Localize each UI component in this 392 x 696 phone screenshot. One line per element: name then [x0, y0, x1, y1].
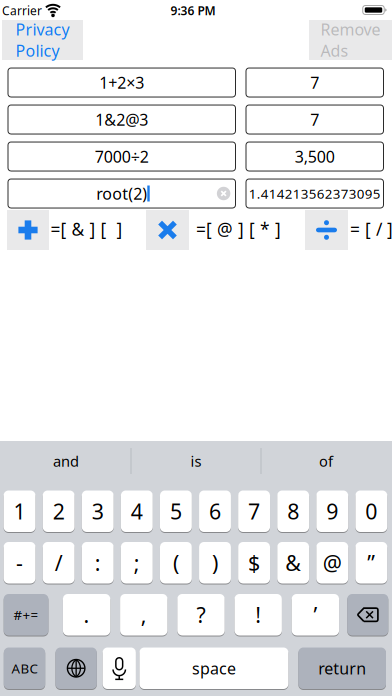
button[interactable]: ’	[292, 593, 339, 636]
button[interactable]: ;	[121, 541, 153, 584]
staticText: 4	[131, 497, 143, 525]
staticText: 9	[326, 497, 338, 525]
staticText: $	[248, 549, 260, 577]
button[interactable]: #+=	[4, 593, 48, 636]
button[interactable]: 4	[121, 490, 153, 532]
staticText: @	[323, 549, 342, 577]
button[interactable]: root(2)	[8, 179, 235, 208]
button[interactable]: 0	[355, 490, 387, 532]
button[interactable]: is	[136, 441, 256, 481]
staticText: =[ & ] [ ]	[50, 217, 122, 240]
staticText: of	[319, 451, 333, 471]
staticText: = [ / ]	[350, 217, 392, 240]
button[interactable]: Multiply	[146, 210, 189, 250]
button[interactable]: ”	[355, 541, 387, 584]
button[interactable]: 1&2@3	[8, 105, 235, 134]
staticText: space	[192, 658, 236, 679]
button[interactable]: ?	[177, 593, 225, 636]
staticText: ABC	[11, 659, 37, 677]
staticText: ,	[141, 601, 147, 629]
staticText: !	[255, 601, 261, 629]
staticText: =[ @ ] [ * ]	[196, 217, 281, 240]
button[interactable]: .	[63, 593, 110, 636]
button[interactable]: Clear text	[217, 187, 230, 200]
button[interactable]: Divide	[305, 210, 348, 250]
button[interactable]: 6	[199, 490, 231, 532]
button[interactable]: ABC	[4, 647, 45, 689]
staticText: ?	[196, 601, 205, 629]
staticText: &	[285, 549, 301, 577]
staticText: 7000÷2	[95, 146, 149, 167]
button[interactable]: Delete	[347, 593, 388, 636]
staticText: 2	[53, 497, 65, 525]
button[interactable]: 3,500	[246, 142, 383, 171]
button[interactable]: !	[234, 593, 282, 636]
staticText: 1+2×3	[99, 72, 144, 93]
staticText: Remove Ads	[320, 19, 380, 61]
button[interactable]: of	[266, 441, 386, 481]
button[interactable]: 2	[43, 490, 75, 532]
staticText: )	[212, 549, 218, 577]
staticText: 1	[14, 497, 26, 525]
staticText: ’	[313, 601, 317, 629]
button[interactable]: )	[199, 541, 231, 584]
staticText: Carrier	[2, 2, 42, 18]
button[interactable]: Next keyboard	[55, 647, 97, 689]
button[interactable]: /	[43, 541, 75, 584]
staticText: :	[95, 549, 101, 577]
button[interactable]: 7000÷2	[8, 142, 235, 171]
staticText: 6	[209, 497, 221, 525]
staticText: 0	[365, 497, 377, 525]
button[interactable]: (	[160, 541, 192, 584]
button[interactable]: 1	[4, 490, 35, 532]
staticText: 1&2@3	[95, 109, 148, 130]
button[interactable]: Privacy Policy	[2, 20, 83, 60]
button[interactable]: $	[238, 541, 270, 584]
button[interactable]: ,	[120, 593, 167, 636]
button[interactable]: :	[82, 541, 114, 584]
button[interactable]: 3	[82, 490, 114, 532]
staticText: and	[53, 451, 79, 471]
staticText: 9:36 PM	[170, 2, 215, 18]
staticText: 7	[248, 497, 260, 525]
staticText: root(2)	[96, 183, 147, 204]
button[interactable]: 9	[316, 490, 348, 532]
staticText: return	[318, 658, 366, 679]
button[interactable]: 7	[246, 68, 383, 97]
staticText: .	[84, 601, 90, 629]
staticText: -	[16, 549, 23, 577]
staticText: 5	[170, 497, 182, 525]
staticText: is	[190, 451, 201, 471]
staticText: /	[55, 549, 63, 577]
button[interactable]: 1+2×3	[8, 68, 235, 97]
staticText: 7	[310, 109, 319, 130]
staticText: ;	[134, 549, 140, 577]
staticText: Privacy Policy	[15, 19, 69, 61]
staticText: 3,500	[295, 146, 335, 167]
button[interactable]: 5	[160, 490, 192, 532]
button[interactable]: 1.414213562373095	[246, 179, 383, 208]
button[interactable]: 7	[238, 490, 270, 532]
button[interactable]: Dictate	[103, 647, 136, 689]
button[interactable]: Remove Ads	[309, 20, 392, 60]
button[interactable]: @	[316, 541, 348, 584]
button[interactable]: &	[277, 541, 309, 584]
staticText: 7	[310, 72, 319, 93]
staticText: (	[173, 549, 179, 577]
button[interactable]: and	[6, 441, 126, 481]
staticText: 3	[92, 497, 104, 525]
staticText: #+=	[14, 606, 39, 624]
button[interactable]: 7	[246, 105, 383, 134]
button[interactable]: Add	[7, 210, 49, 250]
button[interactable]: -	[4, 541, 35, 584]
button[interactable]: return	[298, 647, 386, 689]
staticText: 1.414213562373095	[249, 185, 381, 202]
staticText: ”	[367, 549, 375, 577]
button[interactable]: 8	[277, 490, 309, 532]
button[interactable]: space	[139, 647, 288, 689]
staticText: 8	[287, 497, 299, 525]
